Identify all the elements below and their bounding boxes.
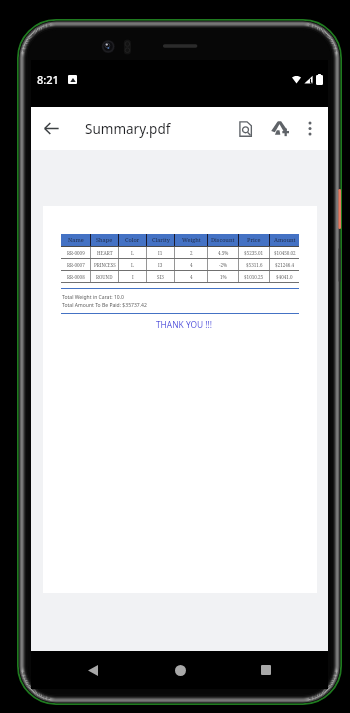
staticText: Total Weight in Carat: 10.0 bbox=[62, 294, 124, 301]
staticText: Discount bbox=[211, 236, 235, 244]
staticText: HEART bbox=[97, 250, 113, 256]
staticText: -2% bbox=[219, 262, 228, 268]
staticText: Name bbox=[68, 236, 84, 244]
staticText: RR-0008 bbox=[67, 274, 85, 280]
staticText: $5235.01 bbox=[244, 250, 264, 256]
button[interactable]: Find in document bbox=[228, 107, 262, 150]
staticText: SI3 bbox=[157, 274, 164, 280]
staticText: Total Amount To Be Paid: $35737.42 bbox=[62, 302, 147, 309]
staticText: I bbox=[132, 274, 134, 280]
staticText: 8:21 bbox=[37, 72, 59, 87]
staticText: 1% bbox=[220, 274, 227, 280]
staticText: 4 bbox=[190, 262, 193, 268]
staticText: $4041.0 bbox=[276, 274, 293, 280]
staticText: RR-0007 bbox=[67, 262, 85, 268]
staticText: I3 bbox=[158, 262, 163, 268]
staticText: Clarity bbox=[152, 236, 170, 244]
staticText: 4.5% bbox=[218, 250, 229, 256]
button[interactable]: Add to Drive bbox=[262, 107, 296, 150]
staticText: Summary.pdf bbox=[85, 120, 171, 138]
staticText: THANK YOU !!! bbox=[65, 319, 303, 330]
staticText: $5311.6 bbox=[246, 262, 263, 268]
staticText: I1 bbox=[158, 250, 163, 256]
staticText: L bbox=[131, 262, 134, 268]
button[interactable]: Home bbox=[156, 651, 204, 689]
staticText: ROUND bbox=[96, 274, 113, 280]
staticText: Color bbox=[125, 236, 140, 244]
staticText: L bbox=[131, 250, 134, 256]
staticText: 4 bbox=[190, 274, 193, 280]
button[interactable]: Back bbox=[69, 651, 117, 689]
staticText: $1010.25 bbox=[244, 274, 264, 280]
staticText: Price bbox=[247, 236, 261, 244]
staticText: $21246.4 bbox=[275, 262, 295, 268]
staticText: 2 bbox=[190, 250, 193, 256]
button[interactable]: Recent apps bbox=[242, 651, 290, 689]
staticText: PRINCESS bbox=[94, 262, 116, 268]
button[interactable]: Navigate up bbox=[31, 107, 71, 150]
staticText: Weight bbox=[182, 236, 201, 244]
staticText: Shape bbox=[96, 236, 113, 244]
staticText: RR-0009 bbox=[67, 250, 85, 256]
staticText: Amount bbox=[274, 236, 296, 244]
button[interactable]: More options bbox=[296, 107, 324, 150]
staticText: $10450.02 bbox=[274, 250, 296, 256]
